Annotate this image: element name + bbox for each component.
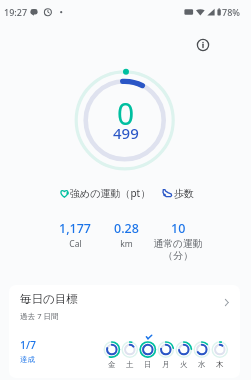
staticText: 日 xyxy=(144,360,152,369)
button[interactable]: 1,177 xyxy=(35,220,115,250)
staticText: 歩数 xyxy=(174,187,194,200)
staticText: Cal xyxy=(69,238,82,250)
button[interactable]: 強めの運動（pt） xyxy=(58,186,144,200)
staticText: 過去 7 日間 xyxy=(20,311,59,321)
button[interactable]: 月 xyxy=(157,340,175,370)
staticText: 達成 xyxy=(20,355,35,364)
staticText: 1,177 xyxy=(59,220,92,237)
staticText: 1/7 xyxy=(20,338,37,352)
staticText: 火 xyxy=(180,360,188,369)
button[interactable]: 土 xyxy=(121,340,139,370)
staticText: 78% xyxy=(222,6,240,18)
staticText: 土 xyxy=(126,360,134,369)
button[interactable]: Info xyxy=(189,31,216,58)
staticText: 月 xyxy=(162,360,170,369)
button[interactable]: 水 xyxy=(193,340,211,370)
staticText: 19:27 xyxy=(4,6,28,18)
button[interactable]: 木 xyxy=(211,340,229,370)
button[interactable]: 金 xyxy=(103,340,121,370)
staticText: 強めの運動（pt） xyxy=(70,186,151,200)
button[interactable]: 火 xyxy=(175,340,193,370)
staticText: 通常の運動 （分） xyxy=(153,238,203,261)
button[interactable]: 10 xyxy=(138,220,218,261)
button[interactable]: 歩数 xyxy=(161,186,195,200)
button[interactable]: 日 xyxy=(139,340,157,370)
button[interactable]: 毎日の目標 xyxy=(9,285,240,378)
button[interactable]: 0.28 xyxy=(86,220,166,250)
staticText: km xyxy=(120,238,133,250)
staticText: 10 xyxy=(171,220,186,237)
staticText: 499 xyxy=(113,123,139,143)
staticText: 0 xyxy=(117,93,135,134)
staticText: 毎日の目標 xyxy=(20,292,78,306)
staticText: 水 xyxy=(198,360,206,369)
button[interactable]: Open xyxy=(217,293,235,311)
staticText: 0.28 xyxy=(114,220,139,237)
staticText: 金 xyxy=(108,360,116,369)
staticText: 木 xyxy=(216,360,224,369)
